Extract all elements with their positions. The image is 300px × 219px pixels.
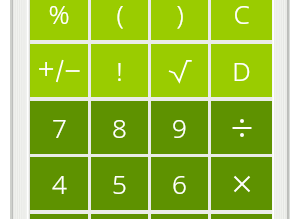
- staticText: 8: [112, 110, 127, 145]
- staticText: D: [232, 53, 251, 88]
- button[interactable]: 9: [151, 101, 208, 154]
- button[interactable]: divide: [211, 101, 272, 154]
- button[interactable]: !: [91, 44, 148, 97]
- button[interactable]: D: [211, 44, 272, 97]
- staticText: 4: [52, 166, 67, 201]
- staticText: (: [116, 0, 124, 31]
- button[interactable]: (: [91, 0, 148, 40]
- button[interactable]: ): [151, 0, 208, 40]
- staticText: 5: [112, 166, 127, 201]
- button[interactable]: C: [211, 0, 272, 40]
- staticText: !: [116, 53, 123, 88]
- button[interactable]: 5: [91, 157, 148, 210]
- button[interactable]: +/-: [30, 44, 88, 97]
- button[interactable]: 4: [30, 157, 88, 210]
- staticText: %: [48, 0, 70, 31]
- button[interactable]: 8: [91, 101, 148, 154]
- staticText: 6: [172, 166, 187, 201]
- button[interactable]: %: [30, 0, 88, 40]
- button[interactable]: sqrt: [151, 44, 208, 97]
- staticText: C: [233, 0, 250, 31]
- staticText: 7: [52, 110, 67, 145]
- button[interactable]: 6: [151, 157, 208, 210]
- button[interactable]: multiply: [211, 157, 272, 210]
- staticText: ): [176, 0, 184, 31]
- staticText: 9: [172, 110, 187, 145]
- button[interactable]: 7: [30, 101, 88, 154]
